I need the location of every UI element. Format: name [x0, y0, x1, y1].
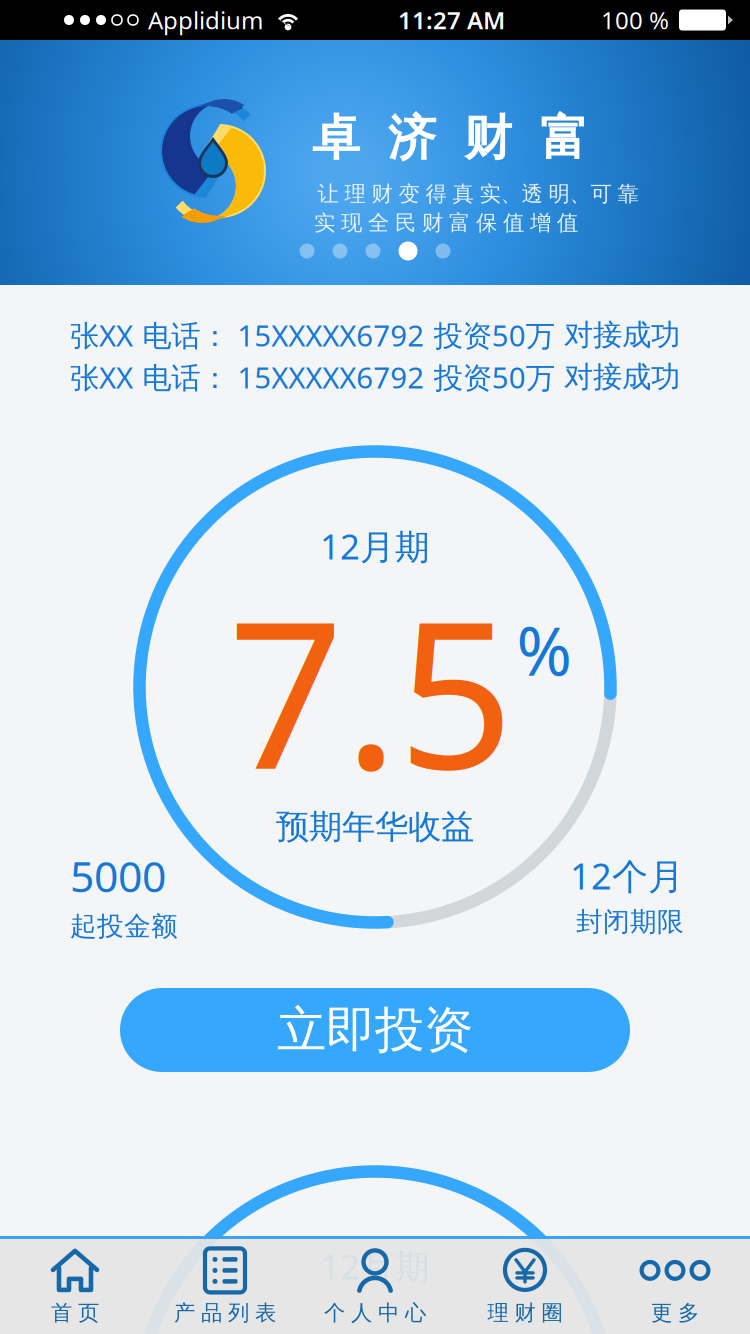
staticText: 起投金额 — [70, 910, 178, 943]
staticText: 个 人 中 心 — [324, 1300, 426, 1326]
staticText: 张XX — [70, 357, 133, 396]
staticText: 100 % — [601, 4, 669, 36]
staticText: 封闭期限 — [576, 905, 684, 938]
staticText: 理 财 圈 — [487, 1300, 562, 1326]
staticText: 12月期 — [320, 523, 430, 569]
staticText: 更 多 — [651, 1300, 699, 1326]
button[interactable]: 个 人 中 心 — [300, 1239, 450, 1334]
staticText: 电话： 15XXXXX6792 — [142, 357, 424, 396]
staticText: 立即投资 — [277, 1000, 473, 1060]
staticText: 对接成功 — [564, 359, 680, 395]
button[interactable]: 更 多 — [600, 1239, 750, 1334]
staticText: 实 现 全 民 财 富 保 值 增 值 — [314, 210, 578, 236]
staticText: 让 理 财 变 得 真 实、透 明、可 靠 — [317, 181, 638, 207]
staticText: 预期年华收益 — [276, 806, 474, 847]
staticText: 对接成功 — [564, 317, 680, 353]
staticText: 首 页 — [51, 1300, 99, 1326]
staticText: 12月期 — [320, 1243, 430, 1289]
button[interactable]: 产 品 列 表 — [150, 1239, 300, 1334]
staticText: 11:27 AM — [398, 4, 505, 36]
staticText: % — [516, 606, 571, 694]
staticText: 7.5 — [228, 1275, 514, 1334]
staticText: 12个月 — [570, 852, 684, 899]
button[interactable]: 理 财 圈 — [450, 1239, 600, 1334]
button[interactable]: 立即投资 — [120, 988, 630, 1072]
staticText: 产 品 列 表 — [174, 1300, 276, 1326]
staticText: 张XX — [70, 315, 133, 354]
staticText: 5000 — [70, 847, 166, 904]
staticText: 7.5 — [228, 555, 514, 824]
staticText: 电话： 15XXXXX6792 — [142, 315, 424, 354]
button[interactable]: 首 页 — [0, 1239, 150, 1334]
staticText: 投资50万 — [434, 357, 555, 396]
staticText: 卓 济 财 富 — [312, 108, 588, 167]
staticText: 投资50万 — [434, 315, 555, 354]
staticText: Applidium — [148, 4, 263, 36]
